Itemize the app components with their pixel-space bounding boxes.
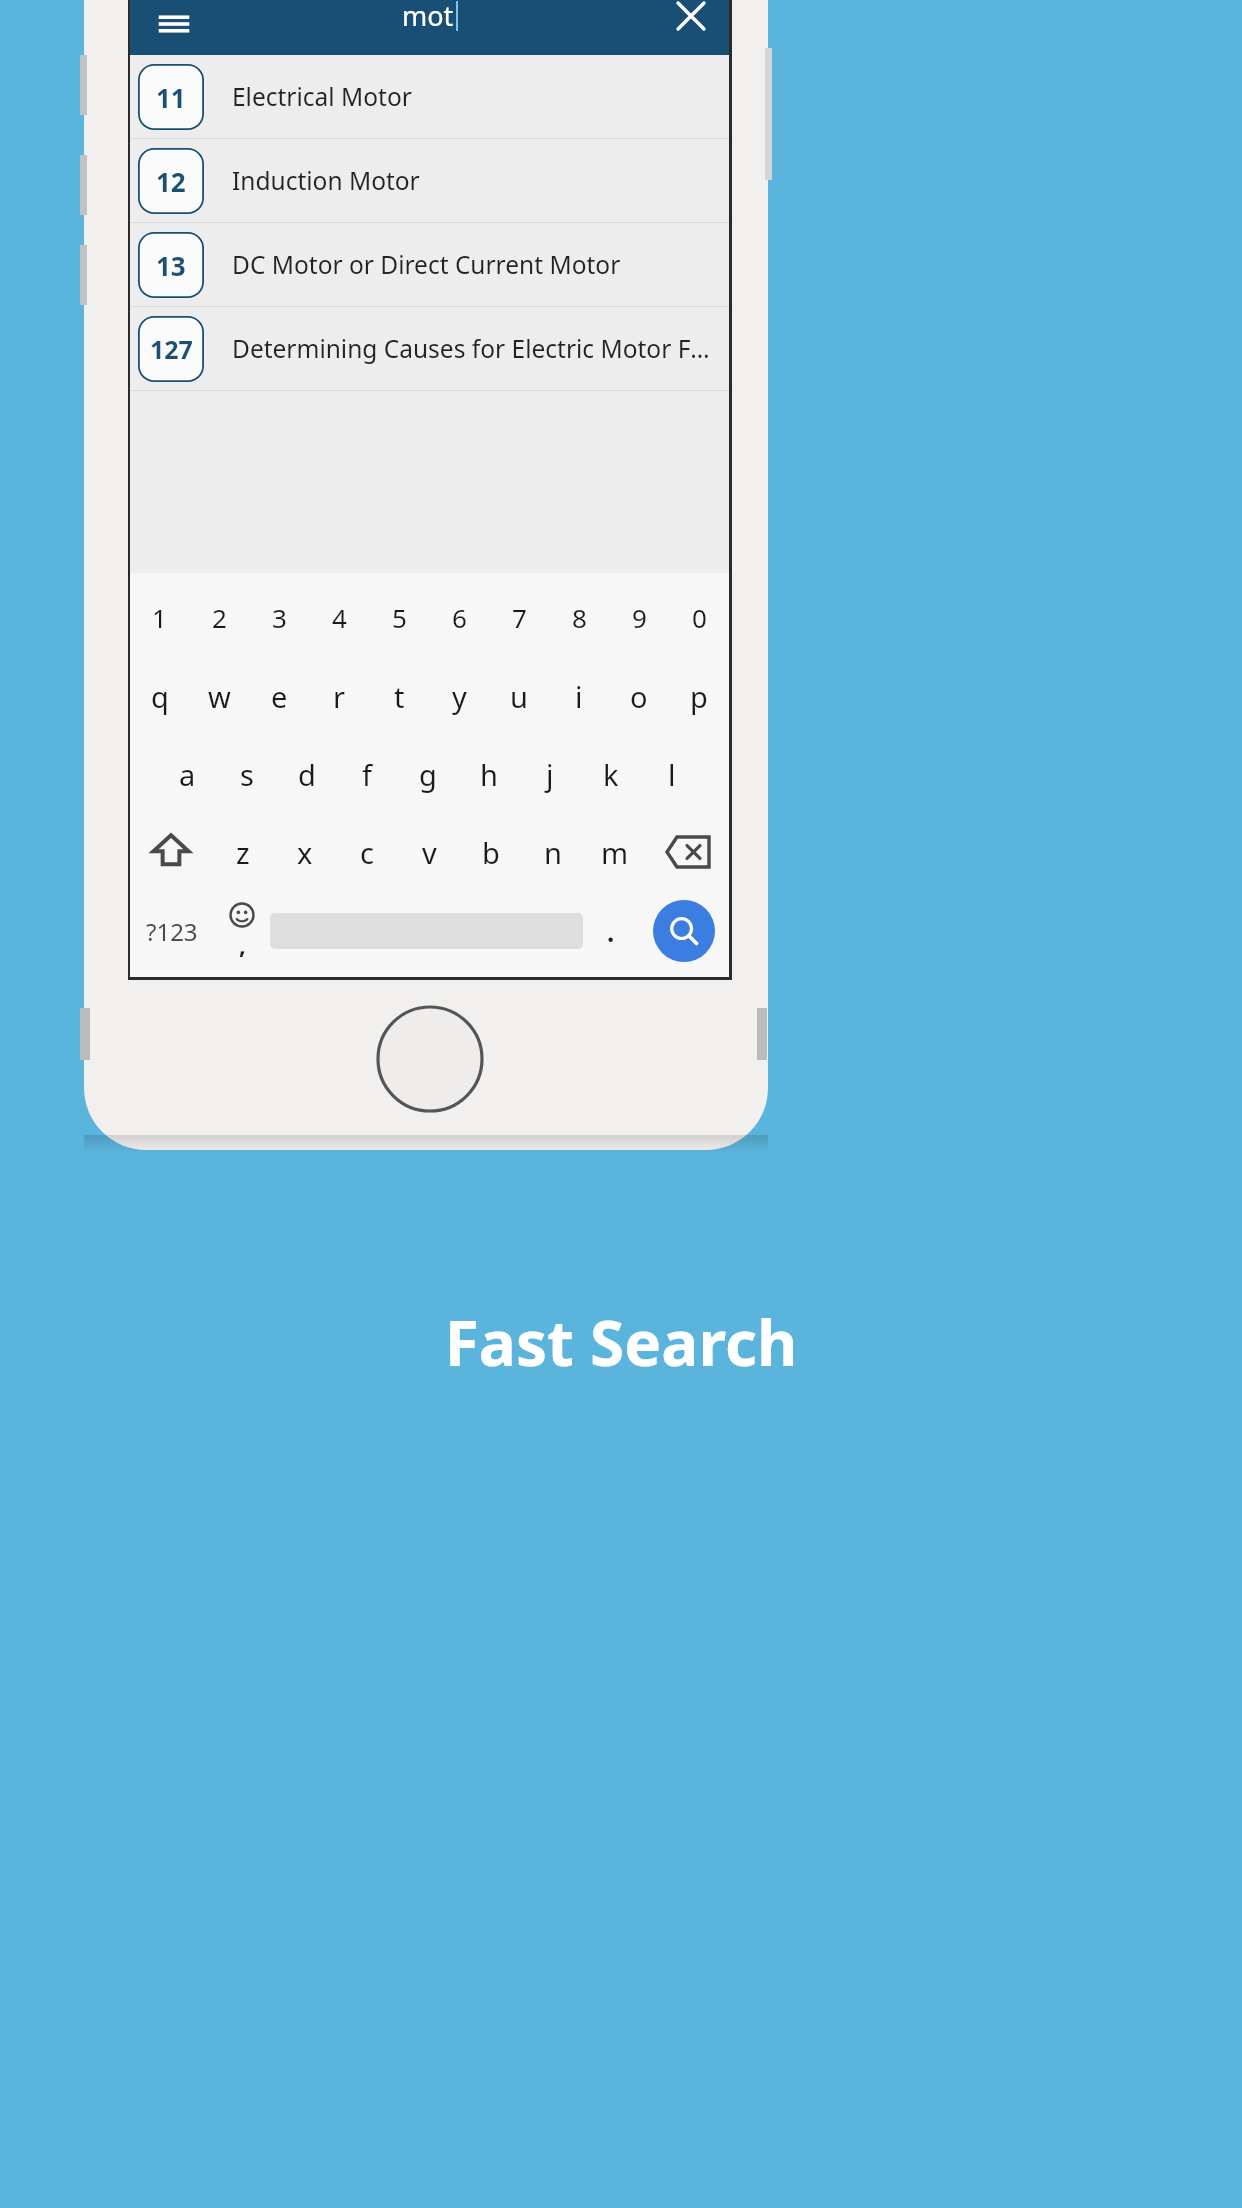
- staticText: DC Motor or Direct Current Motor: [232, 248, 621, 281]
- button[interactable]: Shift: [130, 813, 212, 891]
- button[interactable]: b: [460, 813, 522, 891]
- staticText: 9: [632, 600, 647, 635]
- staticText: 12: [156, 164, 186, 199]
- button[interactable]: g: [397, 735, 458, 813]
- button[interactable]: p: [669, 657, 729, 735]
- staticText: .: [607, 914, 615, 949]
- button[interactable]: 9: [609, 577, 669, 657]
- button[interactable]: Clear search: [667, 0, 715, 40]
- staticText: g: [419, 755, 437, 794]
- button[interactable]: Emoji: [214, 891, 270, 971]
- staticText: u: [510, 677, 528, 716]
- button[interactable]: 6: [429, 577, 489, 657]
- staticText: t: [394, 677, 405, 716]
- button[interactable]: a: [157, 735, 217, 813]
- staticText: Fast Search: [0, 1300, 1242, 1384]
- button[interactable]: s: [217, 735, 277, 813]
- staticText: m: [601, 833, 629, 872]
- staticText: Induction Motor: [232, 164, 420, 197]
- staticText: 3: [272, 600, 287, 635]
- button[interactable]: m: [584, 813, 646, 891]
- button[interactable]: k: [580, 735, 641, 813]
- button[interactable]: j: [519, 735, 580, 813]
- staticText: o: [630, 677, 648, 716]
- button[interactable]: ?123: [130, 891, 214, 971]
- button[interactable]: z: [212, 813, 274, 891]
- button[interactable]: 8: [549, 577, 609, 657]
- staticText: k: [603, 755, 619, 794]
- button[interactable]: q: [130, 657, 189, 735]
- button[interactable]: 12: [130, 139, 729, 222]
- button[interactable]: f: [337, 735, 397, 813]
- button[interactable]: r: [309, 657, 369, 735]
- button[interactable]: l: [641, 735, 702, 813]
- staticText: 5: [392, 600, 407, 635]
- button[interactable]: 1: [130, 577, 189, 657]
- staticText: p: [690, 677, 708, 716]
- staticText: 2: [212, 600, 227, 635]
- staticText: 8: [572, 600, 587, 635]
- button[interactable]: .: [583, 891, 639, 971]
- button[interactable]: 7: [489, 577, 549, 657]
- staticText: v: [422, 833, 437, 872]
- button[interactable]: i: [549, 657, 609, 735]
- staticText: s: [240, 755, 254, 794]
- staticText: x: [297, 833, 313, 872]
- staticText: i: [575, 677, 583, 716]
- staticText: n: [544, 833, 562, 872]
- staticText: 4: [332, 600, 347, 635]
- staticText: j: [546, 755, 554, 794]
- button[interactable]: 2: [189, 577, 249, 657]
- staticText: 13: [156, 248, 186, 283]
- button[interactable]: 4: [309, 577, 369, 657]
- button[interactable]: v: [398, 813, 460, 891]
- button[interactable]: d: [277, 735, 337, 813]
- button[interactable]: e: [249, 657, 309, 735]
- button[interactable]: x: [274, 813, 336, 891]
- staticText: 7: [512, 600, 527, 635]
- button[interactable]: o: [609, 657, 669, 735]
- staticText: f: [362, 755, 372, 794]
- button[interactable]: 5: [369, 577, 429, 657]
- staticText: w: [208, 677, 231, 716]
- staticText: 11: [156, 80, 186, 115]
- staticText: mot: [402, 0, 454, 34]
- staticText: y: [452, 677, 467, 716]
- button[interactable]: h: [458, 735, 519, 813]
- staticText: 127: [150, 332, 193, 366]
- staticText: d: [298, 755, 316, 794]
- button[interactable]: 127: [130, 307, 729, 390]
- button[interactable]: t: [369, 657, 429, 735]
- button[interactable]: Search: [653, 900, 715, 962]
- button[interactable]: w: [189, 657, 249, 735]
- button[interactable]: 13: [130, 223, 729, 306]
- button[interactable]: Backspace: [646, 813, 729, 891]
- staticText: q: [151, 677, 169, 716]
- staticText: Electrical Motor: [232, 80, 412, 113]
- button[interactable]: Menu: [148, 0, 200, 50]
- button[interactable]: y: [429, 657, 489, 735]
- staticText: 0: [692, 600, 707, 635]
- staticText: ,: [239, 928, 246, 961]
- button[interactable]: c: [336, 813, 398, 891]
- staticText: c: [360, 833, 374, 872]
- staticText: a: [179, 755, 196, 794]
- staticText: h: [480, 755, 498, 794]
- staticText: 6: [452, 600, 467, 635]
- staticText: Determining Causes for Electric Motor Fa…: [232, 332, 723, 365]
- button[interactable]: 0: [669, 577, 729, 657]
- button[interactable]: 11: [130, 55, 729, 138]
- button[interactable]: 3: [249, 577, 309, 657]
- staticText: ?123: [146, 915, 198, 948]
- button[interactable]: u: [489, 657, 549, 735]
- staticText: e: [271, 677, 288, 716]
- staticText: r: [333, 677, 345, 716]
- staticText: z: [236, 833, 250, 872]
- staticText: l: [668, 755, 676, 794]
- staticText: b: [482, 833, 500, 872]
- staticText: 1: [152, 600, 167, 635]
- button[interactable]: n: [522, 813, 584, 891]
